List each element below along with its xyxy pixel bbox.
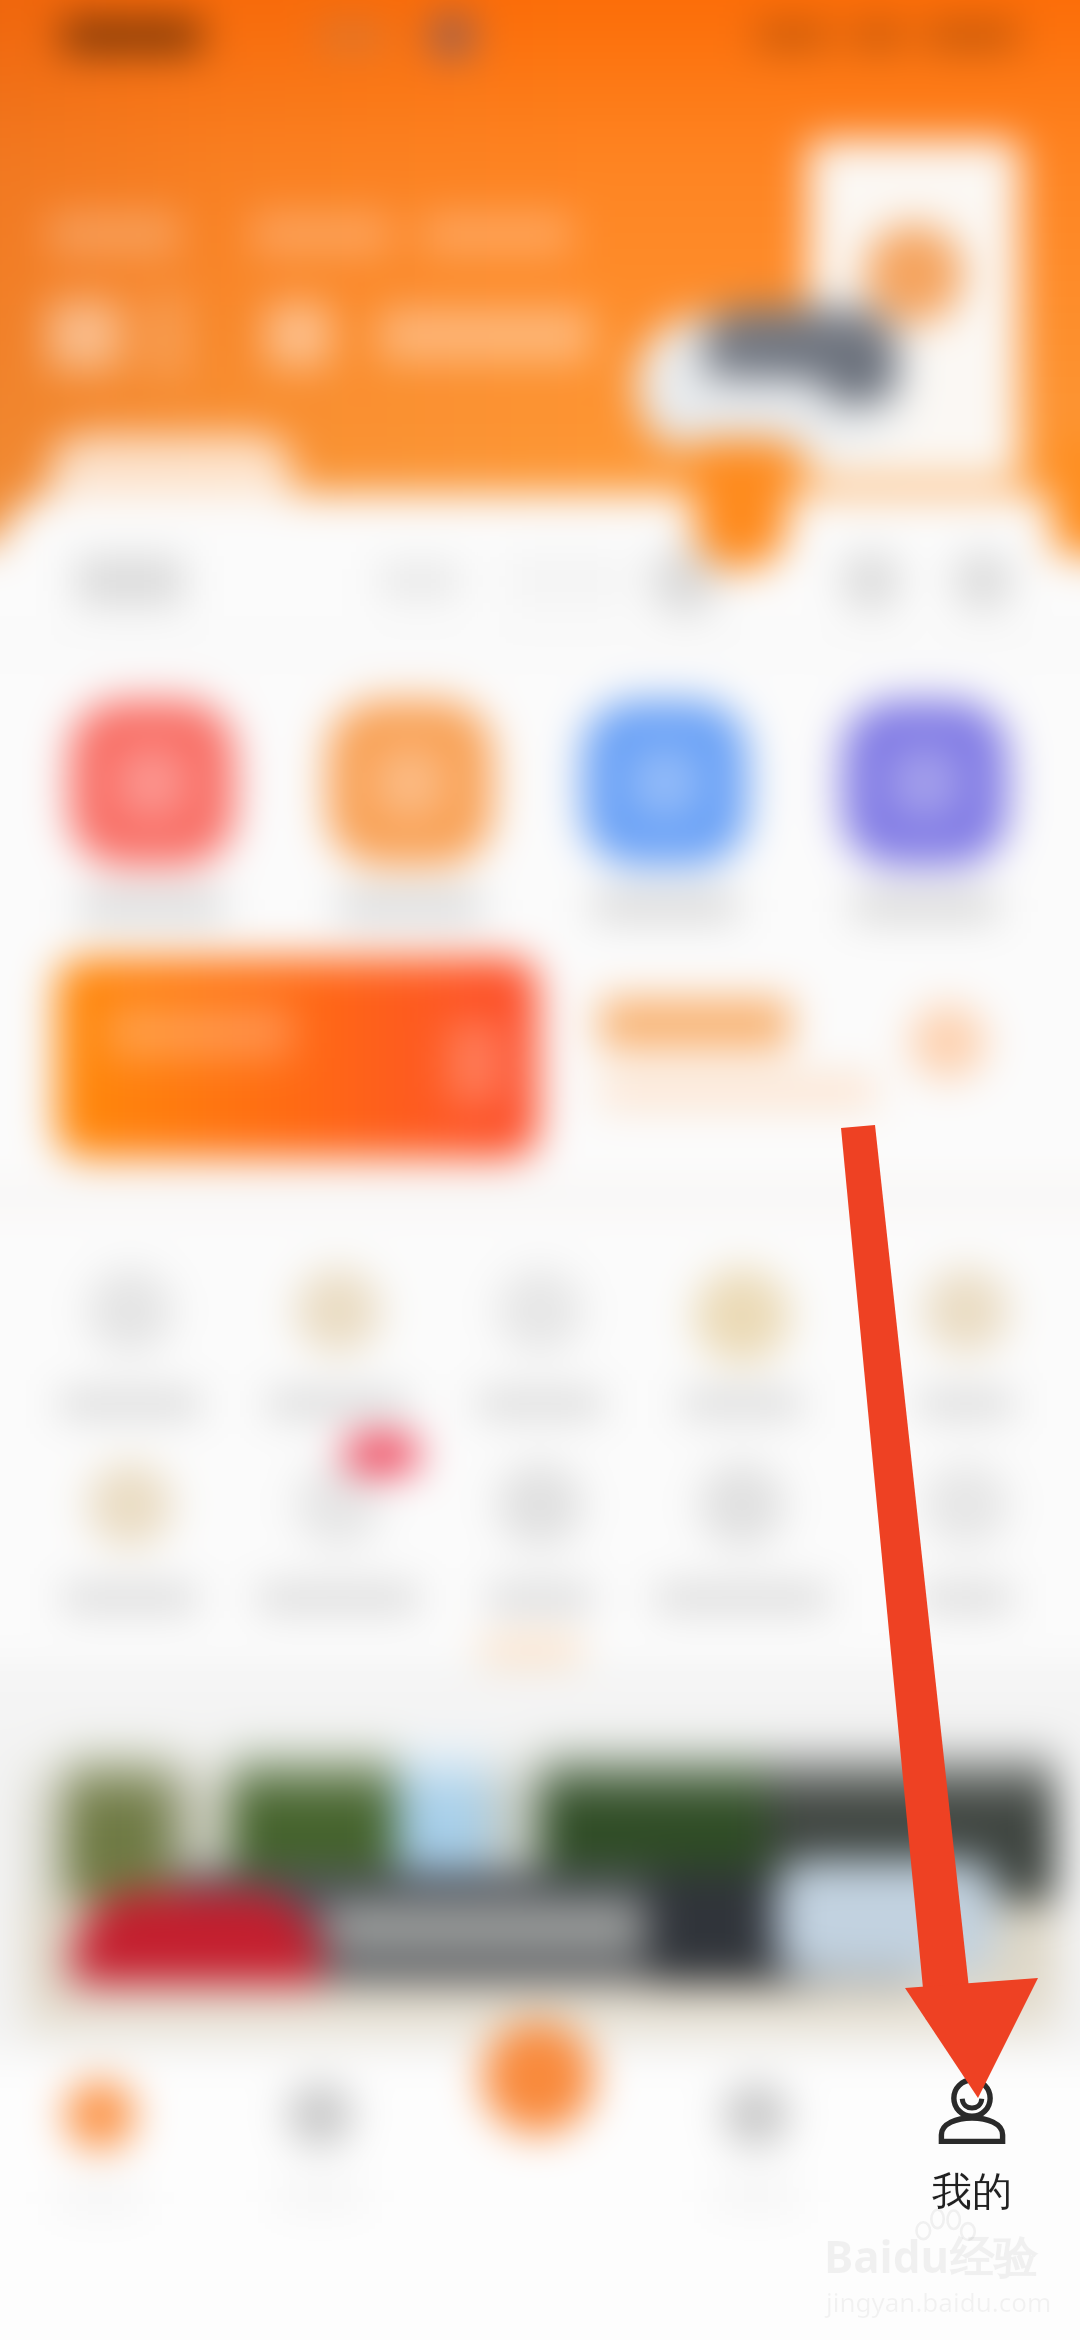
button[interactable] (56, 958, 538, 1158)
button[interactable] (825, 700, 1025, 920)
button[interactable] (678, 2082, 834, 2210)
button[interactable] (442, 1462, 638, 1622)
button[interactable] (242, 2082, 398, 2210)
button[interactable] (32, 1268, 228, 1428)
button[interactable] (868, 1462, 1064, 1622)
button[interactable] (565, 700, 765, 920)
button[interactable] (240, 1462, 436, 1622)
staticText: jingyan.baidu.com (826, 2284, 1052, 2319)
button[interactable] (442, 1268, 638, 1428)
button[interactable] (26, 1742, 1056, 2042)
button[interactable] (808, 140, 1020, 480)
button[interactable] (32, 1462, 228, 1622)
button[interactable] (310, 700, 510, 920)
button[interactable] (240, 1268, 436, 1428)
button[interactable]: Publish (482, 2022, 594, 2134)
staticText: Baidu经验 (824, 2226, 1038, 2286)
button[interactable] (52, 700, 252, 920)
staticText: 我的 (932, 2166, 1012, 2216)
button[interactable]: More (952, 550, 1014, 612)
button[interactable] (22, 2080, 178, 2212)
button[interactable]: 我的 (886, 2078, 1058, 2216)
button[interactable]: Search (650, 546, 720, 616)
button[interactable] (644, 1268, 840, 1428)
button[interactable] (644, 1462, 840, 1622)
button[interactable] (48, 434, 294, 512)
button[interactable]: Messages (840, 550, 902, 612)
button[interactable] (868, 1268, 1064, 1428)
